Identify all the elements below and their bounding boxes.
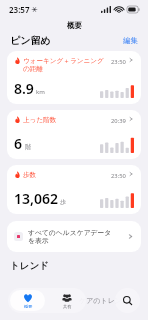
staticText: ケアのトレン	[79, 296, 122, 305]
button[interactable]: すべてのヘルスケアデータ を表示	[7, 221, 141, 252]
button[interactable]: 上った階数	[7, 110, 141, 159]
staticText: 23:50	[111, 58, 126, 66]
staticText: ウォーキング＋ランニング の距離	[23, 57, 108, 73]
button[interactable]: Search	[115, 288, 140, 313]
staticText: 概要	[24, 304, 33, 309]
button[interactable]: 共有	[49, 290, 84, 311]
staticText: 6	[14, 134, 23, 153]
staticText: トレンド	[10, 260, 49, 272]
staticText: 歩数	[23, 171, 108, 179]
button[interactable]: 歩数	[7, 165, 141, 214]
staticText: ピン留め	[10, 34, 51, 47]
staticText: すべてのヘルスケアデータ を表示	[28, 228, 127, 245]
staticText: 13,062	[14, 189, 58, 208]
staticText: 8.9	[14, 79, 34, 98]
staticText: 概要	[67, 21, 82, 30]
staticText: 階	[25, 143, 31, 151]
staticText: 20:39	[111, 117, 126, 125]
button[interactable]: 概要	[10, 290, 45, 311]
button[interactable]: 編集	[123, 36, 138, 45]
staticText: km	[36, 88, 45, 96]
staticText: 上った階数	[23, 116, 108, 124]
staticText: 23:50	[111, 172, 126, 180]
staticText: 共有	[63, 304, 72, 309]
staticText: 23:57	[9, 4, 30, 15]
staticText: 歩	[60, 198, 66, 206]
button[interactable]: ウォーキング＋ランニング の距離	[7, 51, 141, 104]
staticText: 編集	[123, 36, 138, 45]
